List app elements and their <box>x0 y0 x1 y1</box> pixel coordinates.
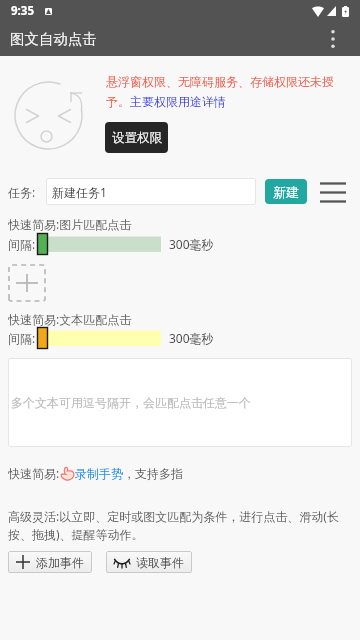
button[interactable]: 新建任务1 <box>46 178 256 205</box>
staticText: 9:35 <box>11 3 34 19</box>
staticText: 设置权限 <box>112 130 162 146</box>
staticText: 新建任务1 <box>52 184 107 200</box>
staticText: ，支持多指 <box>123 466 183 481</box>
staticText: 快速简易:图片匹配点击 <box>8 216 132 232</box>
staticText: 快速简易: <box>8 465 60 481</box>
button[interactable]: 读取事件 <box>106 551 192 573</box>
button[interactable]: 新建 <box>265 179 307 204</box>
button[interactable]: 多个文本可用逗号隔开，会匹配点击任意一个 <box>8 358 352 447</box>
button[interactable]: 添加事件 <box>8 551 92 573</box>
staticText: 悬浮窗权限、无障碍服务、存储权限还未授予。主要权限用途详情 <box>106 74 346 109</box>
staticText: 多个文本可用逗号隔开，会匹配点击任意一个 <box>11 395 251 410</box>
button[interactable]: Add image <box>8 264 46 302</box>
staticText: 录制手势 <box>75 466 123 481</box>
staticText: 快速简易:文本匹配点击 <box>8 311 132 327</box>
staticText: 新建 <box>273 184 299 200</box>
button[interactable]: Interval slider <box>37 233 161 255</box>
staticText: 读取事件 <box>136 555 184 570</box>
staticText: 图文自动点击 <box>10 30 97 48</box>
button[interactable]: Interval slider <box>37 327 161 349</box>
staticText: 高级灵活:以立即、定时或图文匹配为条件，进行点击、滑动(长按、拖拽)、提醒等动作… <box>8 508 352 543</box>
button[interactable]: Menu <box>320 179 346 204</box>
staticText: 任务: <box>8 184 36 200</box>
staticText: 300毫秒 <box>169 236 214 252</box>
button[interactable]: More options <box>318 24 348 54</box>
staticText: 间隔: <box>8 330 36 346</box>
staticText: 添加事件 <box>36 555 84 570</box>
button[interactable]: 设置权限 <box>105 122 168 153</box>
staticText: 300毫秒 <box>169 330 214 346</box>
staticText: 间隔: <box>8 236 36 252</box>
